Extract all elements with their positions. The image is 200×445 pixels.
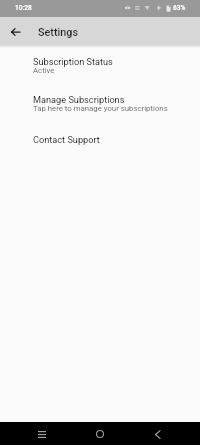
button[interactable]: Navigate up [4,20,27,43]
button[interactable]: Menu [31,423,53,445]
button[interactable]: Manage Subscriptions [0,91,200,121]
button[interactable]: Subscription Status [0,53,200,83]
staticText: Subscription Status [33,56,113,67]
staticText: Settings [38,26,78,39]
staticText: 63% [173,4,186,12]
button[interactable]: Home [89,423,111,445]
staticText: Active [33,66,55,75]
button[interactable]: Contact Support [0,131,200,152]
button[interactable]: Back [146,423,168,445]
staticText: 10:28 [15,4,32,12]
staticText: Manage Subscriptions [33,94,125,105]
staticText: Contact Support [33,134,100,145]
staticText: Tap here to manage your subscriptions [33,104,168,113]
